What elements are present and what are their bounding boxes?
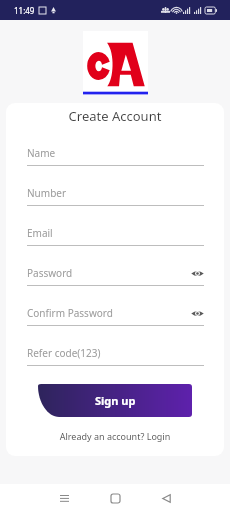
staticText: 11:49: [14, 5, 35, 16]
staticText: Refer code(123): [27, 346, 101, 360]
staticText: Confirm Password: [27, 306, 113, 320]
button[interactable]: Email: [27, 221, 204, 261]
staticText: Sign up: [95, 393, 136, 408]
button[interactable]: Password: [27, 261, 204, 301]
staticText: Create Account: [6, 107, 224, 125]
button[interactable]: Name: [27, 141, 204, 181]
staticText: Number: [27, 186, 67, 200]
staticText: Name: [27, 146, 56, 160]
other: Show password: [191, 267, 204, 280]
staticText: Password: [27, 266, 73, 280]
staticText: Email: [27, 226, 53, 240]
button[interactable]: Sign up: [38, 384, 192, 417]
button[interactable]: Already an account? Login: [6, 430, 224, 442]
button[interactable]: Back: [152, 484, 180, 512]
button[interactable]: Number: [27, 181, 204, 221]
button[interactable]: Home: [101, 484, 129, 512]
button[interactable]: Refer code(123): [27, 341, 204, 381]
button[interactable]: Confirm Password: [27, 301, 204, 341]
other: Show password: [191, 307, 204, 320]
button[interactable]: Recent apps: [50, 484, 78, 512]
